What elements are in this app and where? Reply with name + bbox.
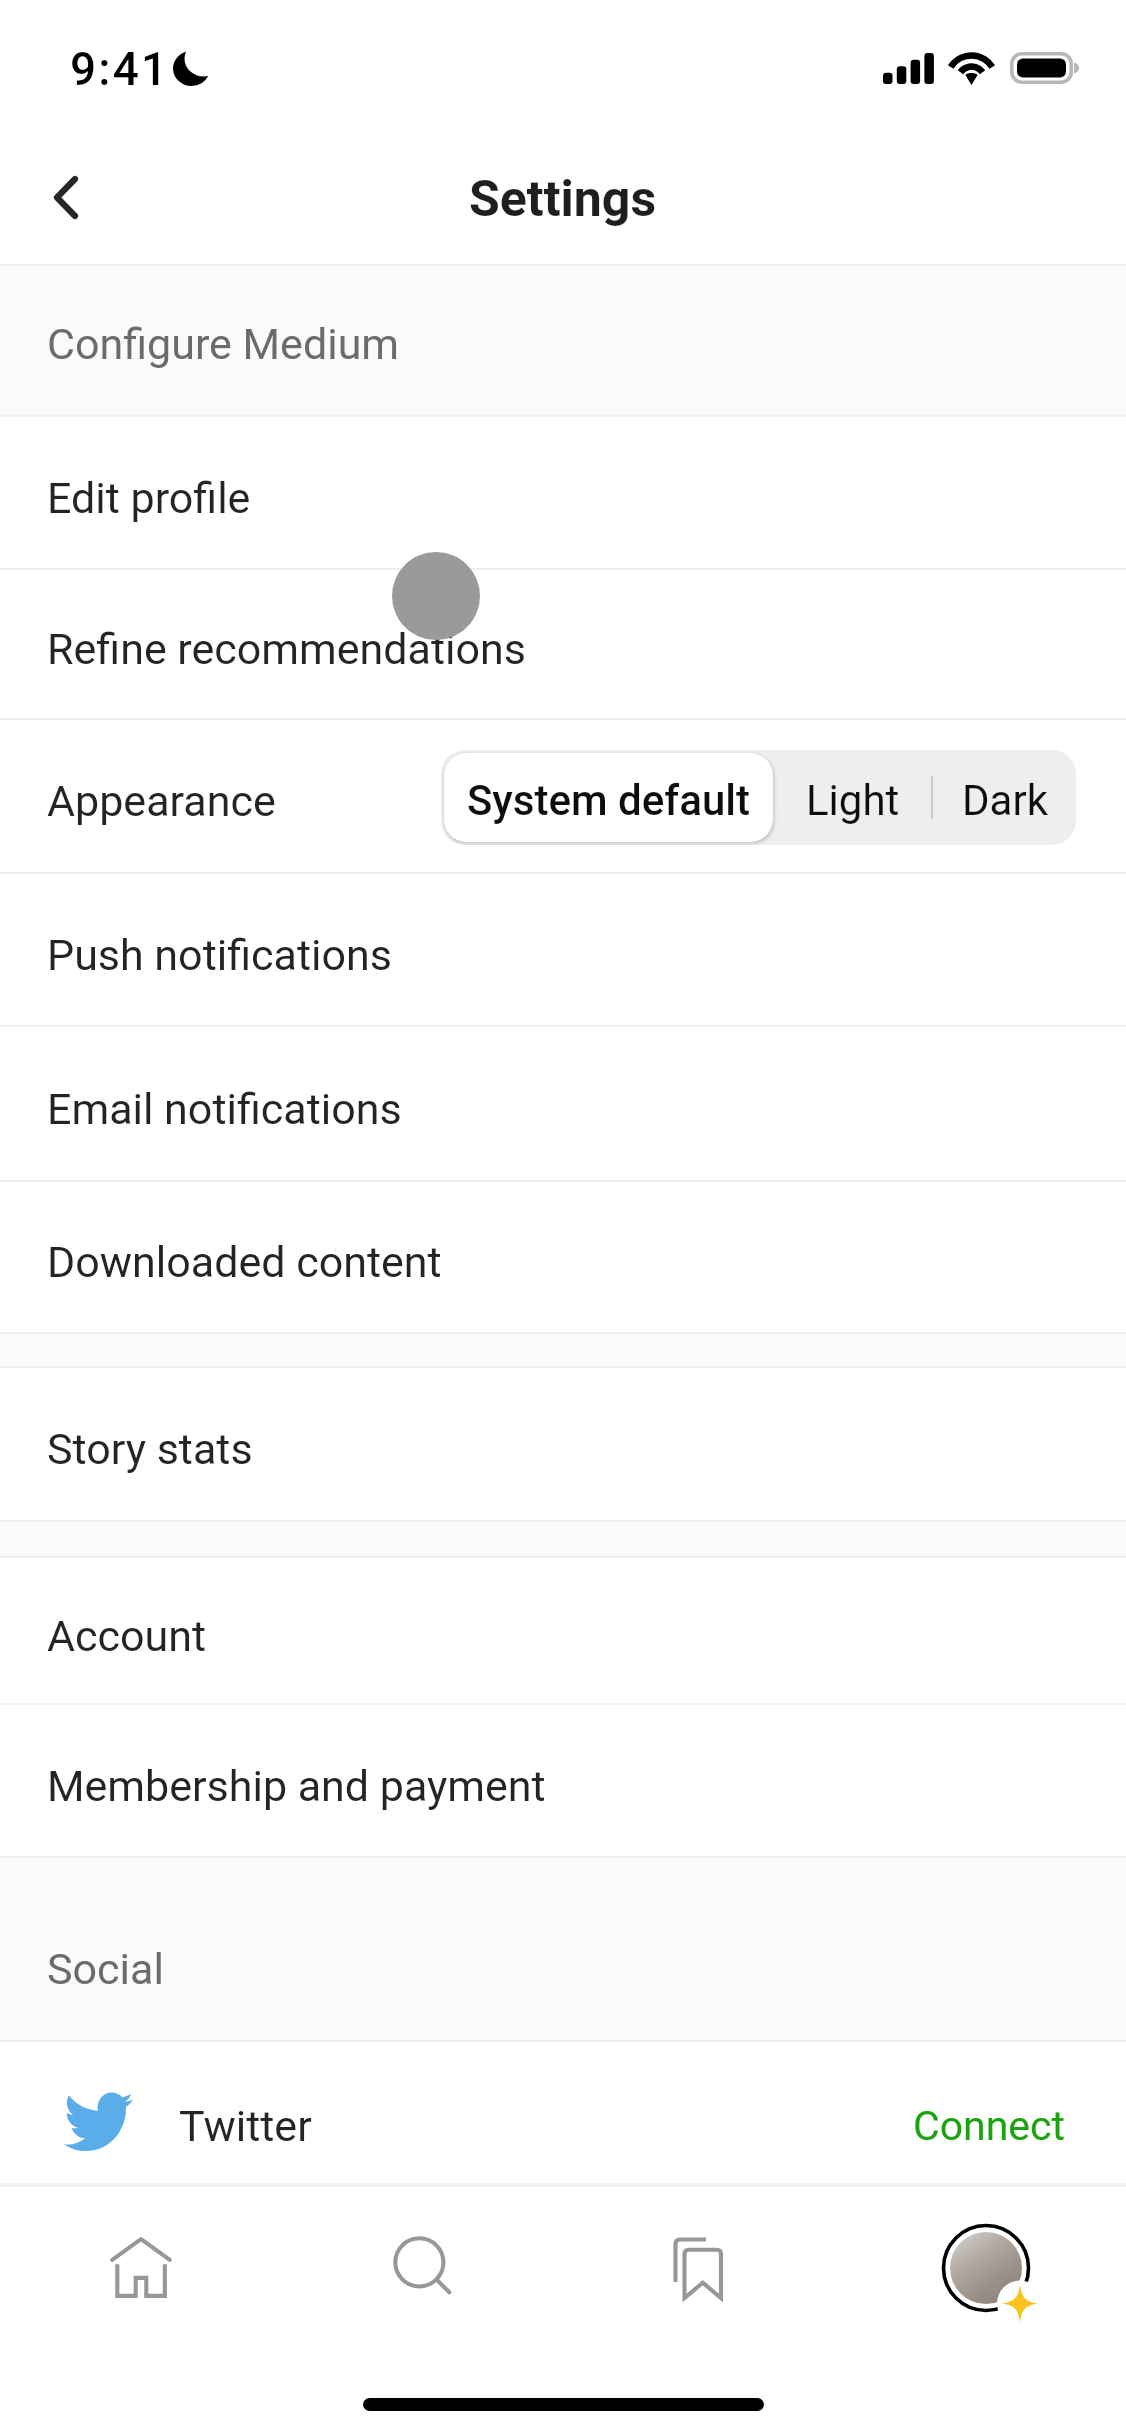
staticText: System default xyxy=(467,776,751,825)
button[interactable]: Bookmarks xyxy=(638,2208,758,2328)
button[interactable]: Profile xyxy=(926,2208,1046,2328)
staticText: 9:41 xyxy=(70,42,170,96)
button[interactable]: Email notifications xyxy=(0,1027,1126,1180)
staticText: Edit profile xyxy=(47,473,251,523)
staticText: Account xyxy=(47,1611,207,1661)
button[interactable]: Home xyxy=(81,2207,201,2327)
button[interactable]: Twitter xyxy=(0,2042,1126,2183)
button[interactable]: Account xyxy=(0,1558,1126,1703)
button[interactable]: Back xyxy=(22,153,110,241)
button[interactable]: Story stats xyxy=(0,1368,1126,1520)
staticText: Dark xyxy=(962,776,1048,825)
staticText: Light xyxy=(806,776,900,825)
staticText: Connect xyxy=(913,2102,1065,2150)
staticText: Membership and payment xyxy=(47,1761,546,1811)
staticText: Story stats xyxy=(47,1424,253,1474)
button[interactable]: System default xyxy=(444,753,773,842)
button[interactable]: Downloaded content xyxy=(0,1182,1126,1332)
button[interactable]: Search xyxy=(363,2206,483,2326)
button[interactable]: Edit profile xyxy=(0,417,1126,568)
staticText: Social xyxy=(47,1944,164,1994)
staticText: Twitter xyxy=(179,2101,312,2151)
staticText: Configure Medium xyxy=(47,319,400,369)
button[interactable]: Light xyxy=(773,750,932,845)
staticText: Settings xyxy=(469,170,657,229)
button[interactable]: Membership and payment xyxy=(0,1705,1126,1856)
staticText: Refine recommendations xyxy=(47,624,526,674)
staticText: Appearance xyxy=(47,776,276,826)
staticText: Email notifications xyxy=(47,1084,402,1134)
button[interactable]: Dark xyxy=(933,750,1076,845)
button[interactable]: Refine recommendations xyxy=(0,570,1126,718)
staticText: Downloaded content xyxy=(47,1237,442,1287)
staticText: Push notifications xyxy=(47,930,392,980)
button[interactable]: Push notifications xyxy=(0,874,1126,1025)
